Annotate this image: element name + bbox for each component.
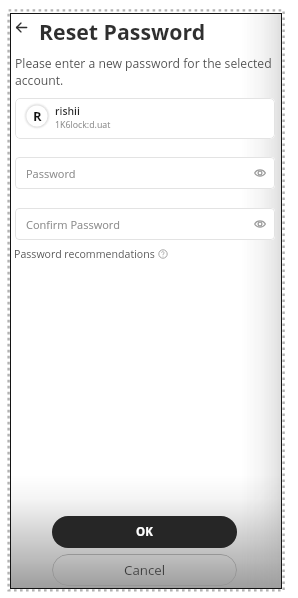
- button[interactable]: Confirm Password: [15, 208, 275, 240]
- button[interactable]: R: [15, 98, 275, 139]
- button[interactable]: Password: [15, 157, 275, 189]
- staticText: 1K6lock:d.uat: [55, 119, 111, 131]
- staticText: Confirm Password: [26, 217, 120, 232]
- staticText: Cancel: [124, 561, 166, 579]
- staticText: OK: [136, 524, 153, 540]
- other: Show password: [254, 218, 266, 230]
- button[interactable]: Cancel: [52, 554, 237, 586]
- staticText: rishii: [55, 104, 80, 118]
- staticText: Please enter a new password for the sele…: [15, 55, 277, 89]
- button[interactable]: Password recommendations: [14, 247, 168, 261]
- staticText: Password: [26, 166, 76, 181]
- staticText: Password recommendations: [14, 247, 155, 261]
- button[interactable]: OK: [52, 516, 237, 548]
- other: Help: [158, 249, 168, 259]
- staticText: Reset Password: [39, 17, 206, 46]
- other: Show password: [254, 167, 266, 179]
- button[interactable]: Back: [7, 13, 35, 41]
- staticText: R: [33, 107, 42, 125]
